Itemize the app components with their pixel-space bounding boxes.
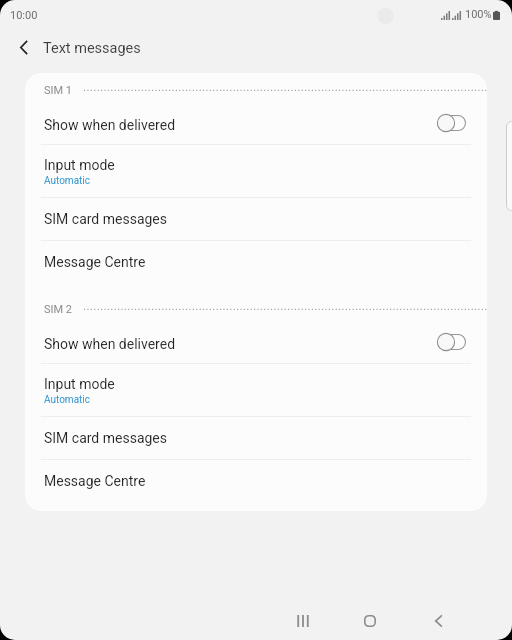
button[interactable]: Recents: [281, 600, 325, 640]
staticText: SIM card messages: [44, 211, 168, 227]
staticText: 100%: [465, 8, 492, 21]
button[interactable]: Input mode: [25, 364, 487, 416]
staticText: Message Centre: [44, 473, 146, 489]
button[interactable]: Message Centre: [25, 460, 487, 502]
staticText: SIM card messages: [44, 430, 168, 446]
button[interactable]: SIM card messages: [25, 198, 487, 240]
button[interactable]: SIM card messages: [25, 417, 487, 459]
button[interactable]: Home: [348, 600, 392, 640]
staticText: SIM 2: [44, 303, 73, 316]
staticText: Input mode: [44, 376, 115, 392]
staticText: Show when delivered: [44, 336, 176, 352]
button[interactable]: Input mode: [25, 145, 487, 197]
staticText: Message Centre: [44, 254, 146, 270]
staticText: Automatic: [44, 394, 91, 406]
staticText: Text messages: [43, 40, 141, 57]
button[interactable]: Show when delivered: [25, 325, 487, 363]
staticText: 10:00: [10, 9, 38, 22]
button[interactable]: Back: [416, 600, 460, 640]
button[interactable]: Show when delivered: [25, 106, 487, 144]
staticText: Show when delivered: [44, 117, 176, 133]
staticText: SIM 1: [44, 84, 73, 97]
button[interactable]: Message Centre: [25, 241, 487, 283]
staticText: Input mode: [44, 157, 115, 173]
button[interactable]: Navigate up: [6, 29, 42, 65]
staticText: Automatic: [44, 175, 91, 187]
